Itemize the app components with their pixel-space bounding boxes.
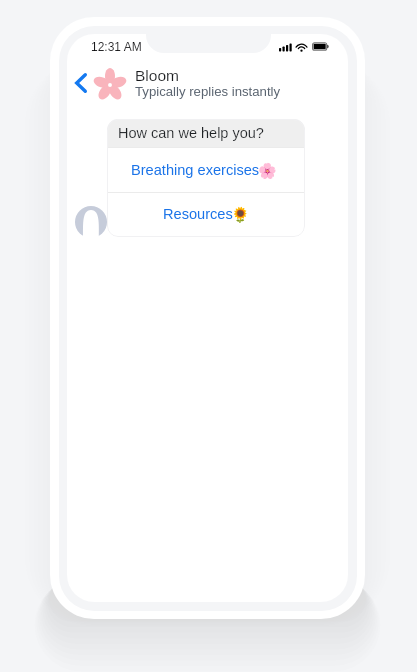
button[interactable]: Back bbox=[70, 68, 92, 98]
staticText: Resources bbox=[163, 206, 233, 222]
staticText: Breathing exercises bbox=[131, 162, 260, 178]
button[interactable]: Breathing exercises bbox=[107, 148, 305, 192]
staticText: 🌸 bbox=[258, 162, 277, 180]
staticText: 🌻 bbox=[231, 206, 250, 224]
staticText: 12:31 AM bbox=[91, 40, 142, 53]
staticText: Bloom bbox=[135, 67, 179, 84]
staticText: Typically replies instantly bbox=[135, 84, 281, 99]
staticText: How can we help you? bbox=[118, 125, 264, 141]
button[interactable]: Resources bbox=[107, 193, 305, 237]
